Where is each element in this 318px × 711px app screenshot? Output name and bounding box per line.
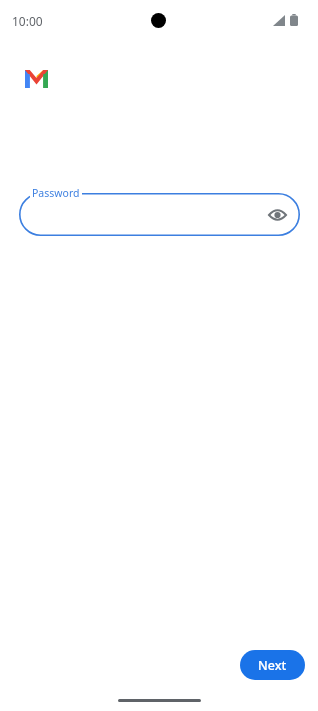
staticText: 10:00 bbox=[12, 13, 43, 29]
staticText: Password bbox=[32, 186, 80, 200]
button[interactable]: Show password bbox=[266, 204, 288, 226]
button[interactable]: Password bbox=[19, 193, 300, 236]
button[interactable]: Next bbox=[240, 650, 305, 680]
staticText: Next bbox=[258, 657, 287, 674]
